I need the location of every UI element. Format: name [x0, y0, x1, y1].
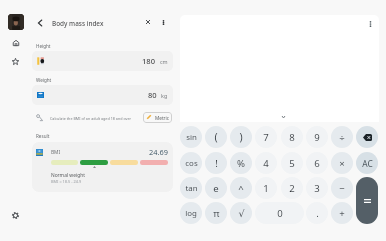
button[interactable]: 8 [281, 126, 303, 148]
staticText: 1 [263, 182, 269, 195]
staticText: cm [160, 58, 168, 65]
staticText: % [237, 157, 245, 170]
staticText: Weight [36, 77, 52, 83]
staticText: AC [362, 158, 373, 169]
button[interactable]: More options [157, 16, 169, 28]
staticText: + [339, 207, 345, 220]
button[interactable]: sin [180, 126, 202, 148]
button[interactable]: √ [230, 202, 252, 224]
staticText: 7 [263, 131, 269, 144]
button[interactable]: ) [230, 126, 252, 148]
button[interactable]: AC [356, 152, 378, 174]
staticText: . [316, 207, 319, 220]
button[interactable]: 6 [306, 152, 328, 174]
staticText: Result [36, 133, 50, 139]
button[interactable]: 4 [255, 152, 277, 174]
staticText: 80 [148, 90, 157, 100]
staticText: Metric [155, 115, 169, 121]
staticText: 180 [142, 56, 156, 66]
staticText: BMI [51, 149, 61, 156]
button[interactable]: Home [8, 35, 23, 50]
button[interactable]: 2 [281, 177, 303, 199]
staticText: 8 [289, 131, 295, 144]
button[interactable]: + [331, 202, 353, 224]
button[interactable]: Back [33, 16, 47, 30]
button[interactable]: Equals [356, 177, 378, 224]
staticText: π [213, 207, 220, 220]
button[interactable]: Close [142, 16, 154, 28]
button[interactable]: More options [365, 19, 375, 29]
button[interactable]: × [331, 152, 353, 174]
button[interactable]: log [180, 202, 202, 224]
staticText: ( [214, 130, 218, 144]
button[interactable]: 180 [32, 51, 173, 71]
button[interactable]: Backspace [356, 126, 378, 148]
button[interactable]: 3 [306, 177, 328, 199]
staticText: sin [186, 132, 197, 143]
staticText: 6 [314, 157, 320, 170]
button[interactable]: Metric [143, 112, 172, 123]
staticText: 2 [289, 182, 295, 195]
staticText: − [339, 182, 345, 195]
button[interactable]: ! [205, 152, 227, 174]
button[interactable]: . [306, 202, 328, 224]
staticText: ÷ [339, 131, 345, 144]
button[interactable]: 7 [255, 126, 277, 148]
staticText: Body mass index [52, 19, 104, 28]
staticText: 9 [314, 131, 320, 144]
staticText: Calculate the BMI of an adult aged 18 an… [50, 116, 132, 121]
button[interactable]: ÷ [331, 126, 353, 148]
staticText: 24.69 [149, 147, 168, 157]
button[interactable]: 5 [281, 152, 303, 174]
staticText: 5 [289, 157, 295, 170]
button[interactable]: 0 [255, 202, 304, 224]
staticText: 3 [314, 182, 320, 195]
button[interactable]: % [230, 152, 252, 174]
staticText: 0 [277, 207, 283, 220]
button[interactable]: ^ [230, 177, 252, 199]
button[interactable]: − [331, 177, 353, 199]
staticText: BMI = 18.5 - 24.9 [51, 179, 82, 184]
staticText: tan [185, 183, 198, 194]
button[interactable]: tan [180, 177, 202, 199]
button[interactable]: Profile [8, 14, 24, 30]
staticText: × [339, 157, 345, 170]
button[interactable]: ( [205, 126, 227, 148]
staticText: √ [238, 208, 245, 219]
button[interactable]: 1 [255, 177, 277, 199]
staticText: cos [185, 158, 198, 169]
staticText: 4 [263, 157, 269, 170]
staticText: e [213, 182, 219, 195]
button[interactable]: Settings [8, 208, 23, 223]
button[interactable]: BMI [32, 142, 173, 192]
button[interactable]: Favorites [8, 54, 23, 69]
button[interactable]: cos [180, 152, 202, 174]
staticText: Normal weight [51, 172, 85, 179]
button[interactable]: 9 [306, 126, 328, 148]
staticText: log [185, 208, 197, 219]
button[interactable]: π [205, 202, 227, 224]
button[interactable]: e [205, 177, 227, 199]
staticText: Height [36, 43, 51, 49]
staticText: ) [239, 130, 243, 144]
staticText: kg [161, 92, 168, 99]
staticText: ! [215, 157, 218, 170]
button[interactable]: 80 [32, 85, 173, 105]
staticText: ^ [238, 182, 244, 195]
